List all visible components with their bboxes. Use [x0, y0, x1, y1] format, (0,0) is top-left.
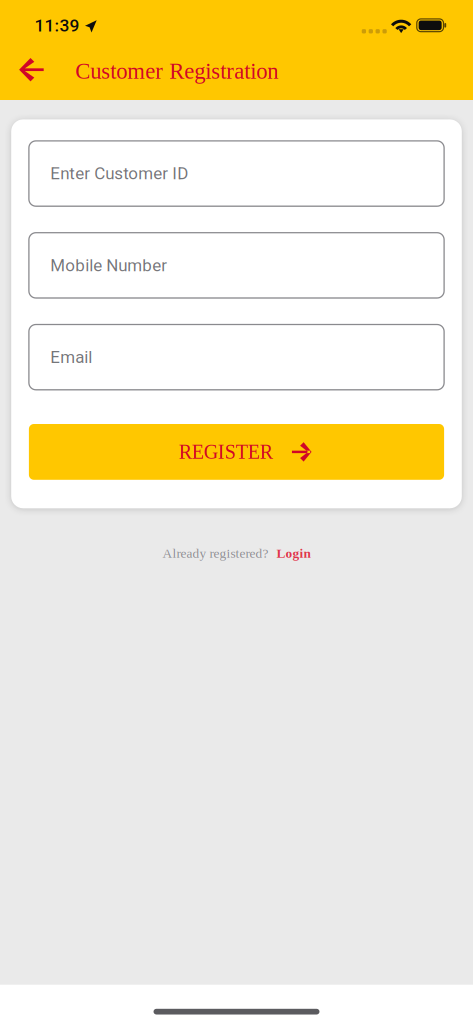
- staticText: Email: [50, 347, 92, 367]
- staticText: 11:39: [34, 15, 79, 36]
- staticText: Login: [276, 546, 310, 561]
- staticText: Already registered?: [162, 546, 268, 561]
- button[interactable]: REGISTER: [29, 424, 444, 480]
- button[interactable]: Back: [9, 48, 53, 92]
- staticText: REGISTER: [179, 441, 273, 463]
- button[interactable]: Login: [276, 546, 310, 561]
- staticText: Mobile Number: [50, 255, 167, 275]
- staticText: Customer Registration: [75, 58, 278, 84]
- staticText: Enter Customer ID: [50, 164, 188, 183]
